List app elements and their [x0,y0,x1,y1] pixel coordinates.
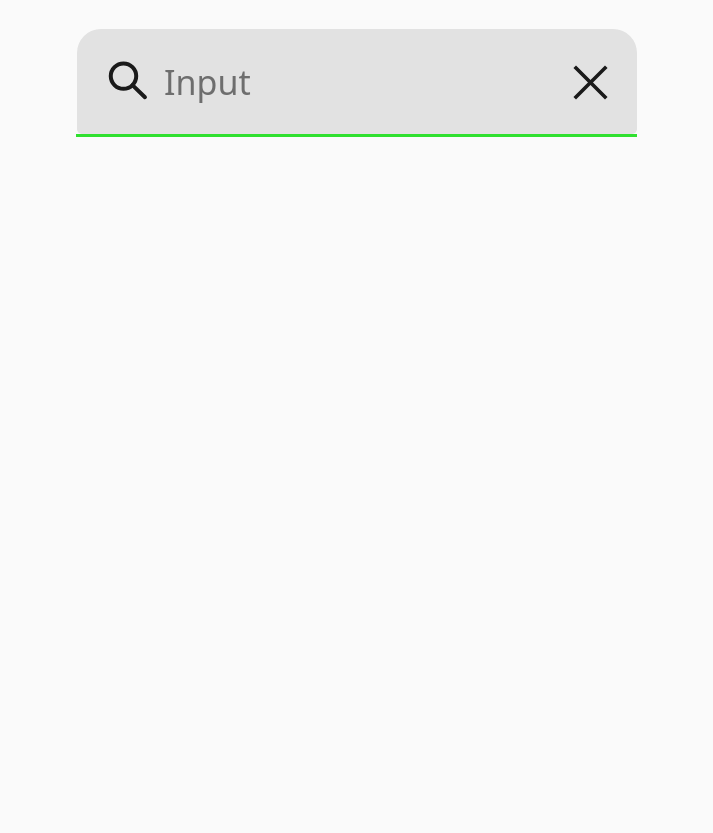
button[interactable]: Search [77,29,637,134]
button[interactable]: Search [107,60,151,104]
button[interactable]: Clear [562,54,618,110]
staticText: Input [164,59,562,105]
